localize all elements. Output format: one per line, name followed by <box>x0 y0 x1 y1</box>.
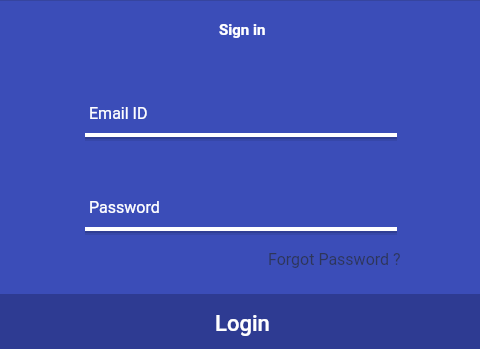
staticText: Password <box>89 198 160 217</box>
button[interactable]: Login <box>0 294 480 349</box>
button[interactable]: Forgot Password ? <box>268 250 401 269</box>
staticText: Sign in <box>219 21 266 39</box>
button[interactable]: Email ID <box>85 104 397 141</box>
staticText: Login <box>215 311 270 337</box>
button[interactable]: Password <box>85 198 397 235</box>
staticText: Email ID <box>89 104 148 123</box>
